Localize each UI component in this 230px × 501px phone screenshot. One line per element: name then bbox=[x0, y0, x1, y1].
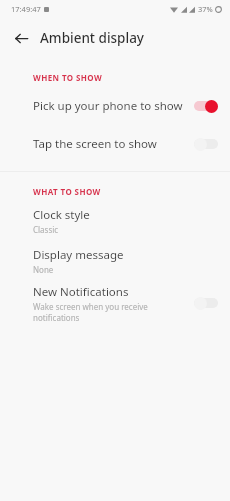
button[interactable]: Pick up your phone to show bbox=[0, 87, 230, 125]
staticText: None bbox=[33, 264, 54, 275]
staticText: Classic bbox=[33, 224, 59, 235]
staticText: Ambient display bbox=[40, 29, 144, 47]
staticText: Tap the screen to show bbox=[33, 136, 157, 152]
button[interactable]: On bbox=[194, 99, 218, 113]
staticText: Clock style bbox=[33, 207, 90, 223]
button[interactable]: Clock style bbox=[0, 201, 230, 241]
button[interactable]: Off bbox=[194, 296, 218, 310]
staticText: Wake screen when you receive notificatio… bbox=[33, 301, 188, 323]
staticText: New Notifications bbox=[33, 284, 129, 300]
button[interactable]: Back bbox=[6, 23, 36, 53]
staticText: 37% bbox=[198, 4, 213, 14]
staticText: WHAT TO SHOW bbox=[33, 186, 101, 197]
button[interactable]: Tap the screen to show bbox=[0, 125, 230, 163]
button[interactable]: New Notifications bbox=[0, 281, 230, 325]
button[interactable]: Display message bbox=[0, 241, 230, 281]
staticText: Pick up your phone to show bbox=[33, 98, 183, 114]
staticText: Display message bbox=[33, 247, 124, 263]
staticText: 17:49:47 bbox=[11, 4, 41, 14]
button[interactable]: Off bbox=[194, 137, 218, 151]
staticText: WHEN TO SHOW bbox=[33, 72, 103, 83]
